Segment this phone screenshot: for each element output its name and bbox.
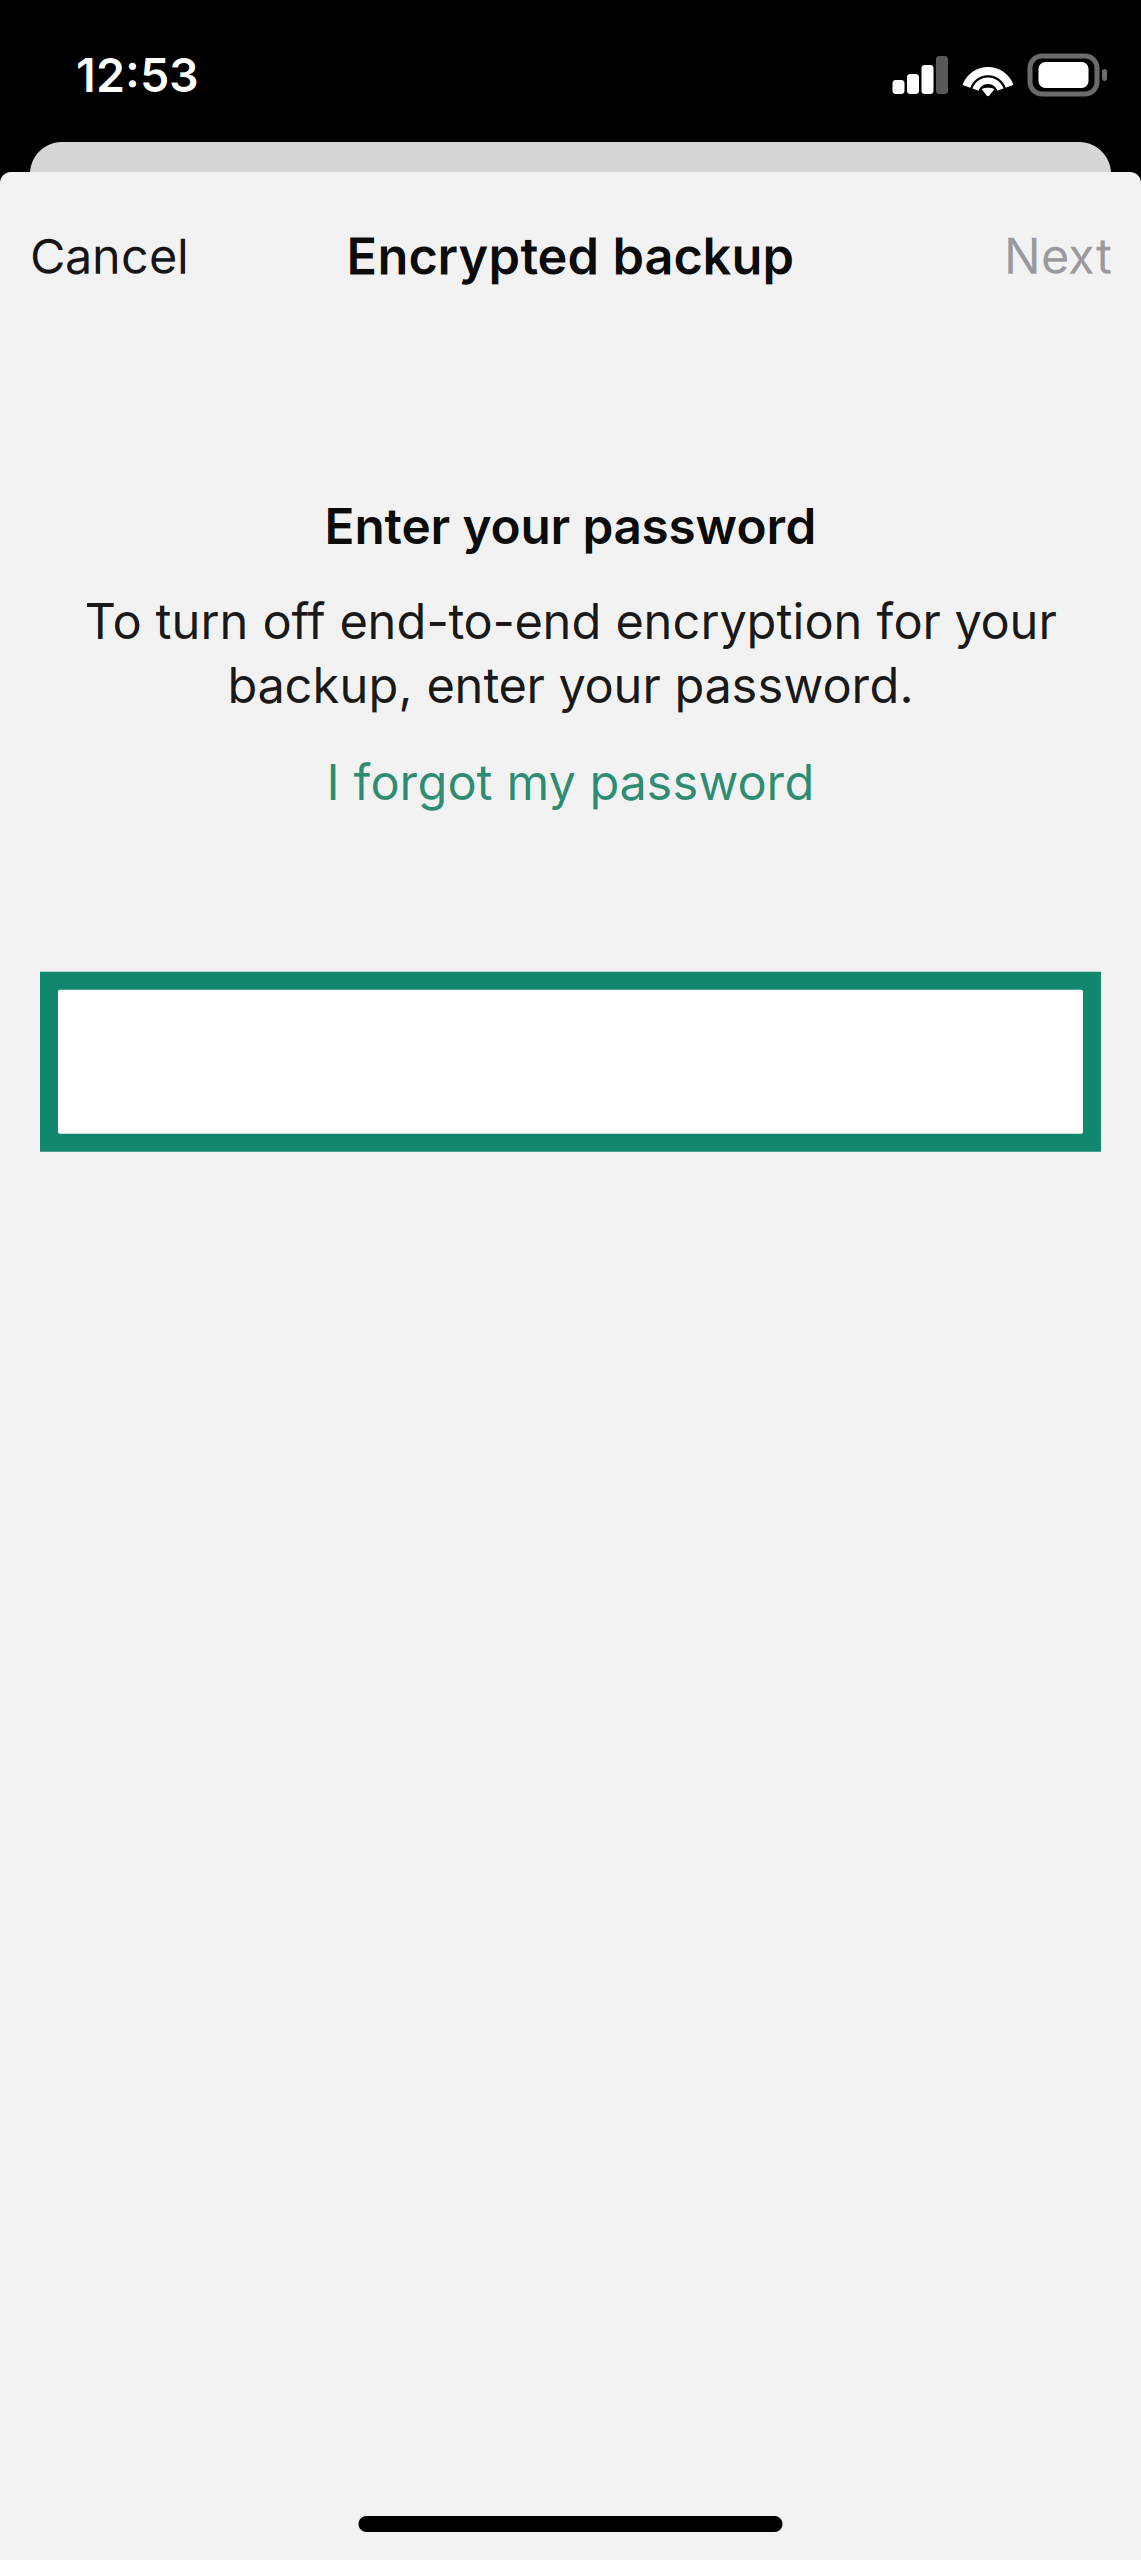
button[interactable]: Next [975,201,1141,311]
button[interactable]: Cancel [0,201,219,311]
staticText: Next [1004,227,1112,285]
button[interactable]: I forgot my password [302,737,838,828]
button[interactable]: Password [0,972,1141,1152]
staticText: Cancel [30,227,189,285]
staticText: Encrypted backup [346,225,794,286]
staticText: I forgot my password [326,753,814,812]
staticText: backup, enter your password. [227,656,913,715]
staticText: To turn off end-to-end encryption for yo… [84,592,1056,651]
staticText: Enter your password [324,496,816,556]
staticText: 12:53 [76,47,199,103]
